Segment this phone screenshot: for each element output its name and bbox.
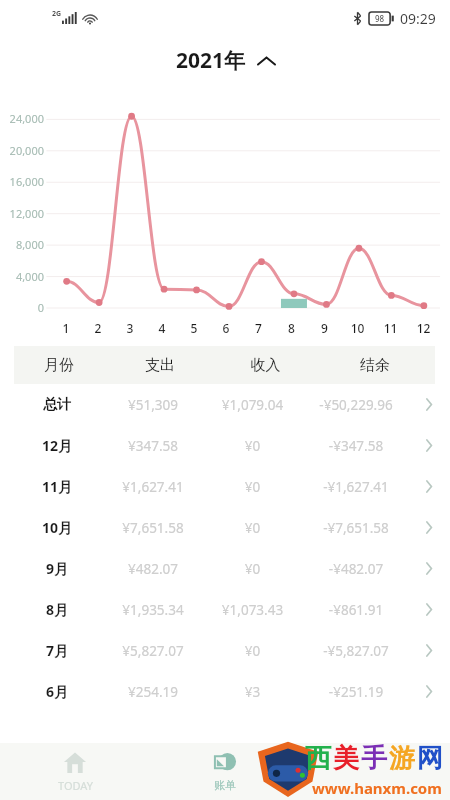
staticText: 9月 [14,559,100,578]
staticText: www.hanxm.com [312,778,442,798]
staticText: 手 [361,742,387,775]
button[interactable]: 账单 [150,745,300,798]
staticText: ¥0 [206,437,299,455]
button[interactable]: 10月 [0,507,450,548]
staticText: ¥1,935.34 [100,601,206,619]
staticText: ¥1,073.43 [206,601,299,619]
staticText: 8月 [14,600,100,619]
staticText: -¥251.19 [299,683,413,701]
staticText: 8 [275,320,308,336]
staticText: -¥7,651.58 [299,519,413,537]
staticText: ¥347.58 [100,437,206,455]
staticText: ¥482.07 [100,560,206,578]
staticText: -¥1,627.41 [299,478,413,496]
staticText: 4,000 [0,269,44,284]
staticText: 7 [242,320,275,336]
staticText: 结余 [315,356,435,375]
staticText: -¥861.91 [299,601,413,619]
staticText: 11月 [14,477,100,496]
staticText: 12,000 [0,206,44,221]
staticText: ¥254.19 [100,683,206,701]
button[interactable]: 8月 [0,589,450,630]
staticText: -¥5,827.07 [299,642,413,660]
button[interactable]: 11月 [0,466,450,507]
staticText: -¥482.07 [299,560,413,578]
button[interactable]: 7月 [0,630,450,671]
staticText: ¥1,079.04 [206,396,299,414]
staticText: ¥0 [206,642,299,660]
staticText: 20,000 [0,143,44,158]
staticText: 6月 [14,682,100,701]
staticText: 10月 [14,518,100,537]
staticText: TODAY [58,778,93,793]
staticText: 3 [114,320,146,336]
staticText: 2G [52,9,62,19]
button[interactable]: 2021年 [168,42,283,79]
staticText: 6 [210,320,242,336]
staticText: 西 [305,742,331,775]
staticText: ¥51,309 [100,396,206,414]
staticText: 12月 [14,436,100,455]
staticText: 月份 [14,356,104,375]
staticText: ¥0 [206,560,299,578]
staticText: 5 [178,320,210,336]
staticText: 16,000 [0,174,44,189]
staticText: ¥1,627.41 [100,478,206,496]
staticText: 2021年 [176,46,246,75]
staticText: ¥3 [206,683,299,701]
staticText: -¥347.58 [299,437,413,455]
staticText: 美 [333,742,359,775]
staticText: 98 [375,13,385,24]
staticText: 支出 [104,356,216,375]
staticText: 2 [82,320,114,336]
button[interactable]: 总计 [0,384,450,425]
staticText: 游 [389,742,415,775]
staticText: 09:29 [400,9,436,28]
staticText: ¥0 [206,478,299,496]
staticText: 11 [374,320,407,336]
button[interactable]: TODAY [0,745,150,799]
staticText: 10 [341,320,374,336]
staticText: 9 [308,320,341,336]
staticText: 收入 [216,356,315,375]
staticText: 网 [417,742,443,775]
staticText: 账单 [214,778,236,792]
staticText: ¥7,651.58 [100,519,206,537]
staticText: 7月 [14,641,100,660]
staticText: 24,000 [0,111,44,126]
staticText: 4 [146,320,178,336]
staticText: ¥0 [206,519,299,537]
staticText: 0 [0,300,44,315]
staticText: 1 [50,320,82,336]
staticText: -¥50,229.96 [299,396,413,414]
button[interactable]: 6月 [0,671,450,712]
button[interactable]: 9月 [0,548,450,589]
staticText: 8,000 [0,237,44,252]
button[interactable]: 12月 [0,425,450,466]
staticText: ¥5,827.07 [100,642,206,660]
staticText: 12 [407,320,440,336]
staticText: 总计 [14,396,100,414]
